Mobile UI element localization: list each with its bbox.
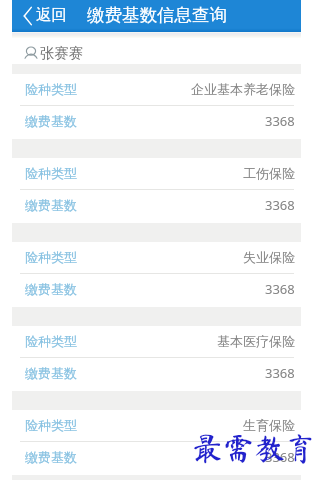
staticText: 基本医疗保险	[217, 333, 295, 349]
staticText: 缴费基数	[25, 449, 77, 465]
staticText: 张赛赛	[40, 44, 84, 62]
button[interactable]: 险种类型	[12, 74, 301, 105]
staticText: 3368	[265, 364, 295, 382]
button[interactable]: 张赛赛	[24, 44, 84, 62]
staticText: 最需教育	[192, 433, 316, 464]
staticText: 险种类型	[25, 417, 77, 433]
staticText: 企业基本养老保险	[191, 81, 295, 97]
staticText: 险种类型	[25, 249, 77, 265]
button[interactable]: 缴费基数	[12, 106, 301, 139]
staticText: 返回	[36, 5, 67, 25]
staticText: 缴费基数	[25, 281, 77, 297]
staticText: 工伤保险	[243, 165, 295, 181]
staticText: 险种类型	[25, 81, 77, 97]
button[interactable]: 返回	[23, 6, 67, 26]
staticText: 3368	[265, 112, 295, 130]
button[interactable]: 缴费基数	[12, 358, 301, 391]
staticText: 生育保险	[243, 417, 295, 433]
button[interactable]: 缴费基数	[12, 190, 301, 223]
button[interactable]: 险种类型	[12, 410, 301, 441]
button[interactable]: 险种类型	[12, 158, 301, 189]
staticText: 缴费基数	[25, 365, 77, 381]
staticText: 3368	[265, 196, 295, 214]
staticText: 缴费基数	[25, 113, 77, 129]
staticText: 3368	[265, 448, 295, 466]
button[interactable]: 缴费基数	[12, 274, 301, 307]
staticText: 缴费基数	[25, 197, 77, 213]
staticText: 险种类型	[25, 165, 77, 181]
button[interactable]: 险种类型	[12, 242, 301, 273]
staticText: 险种类型	[25, 333, 77, 349]
button[interactable]: 险种类型	[12, 326, 301, 357]
staticText: 失业保险	[243, 249, 295, 265]
staticText: 缴费基数信息查询	[87, 4, 227, 26]
button[interactable]: 缴费基数	[12, 442, 301, 475]
staticText: 3368	[265, 280, 295, 298]
